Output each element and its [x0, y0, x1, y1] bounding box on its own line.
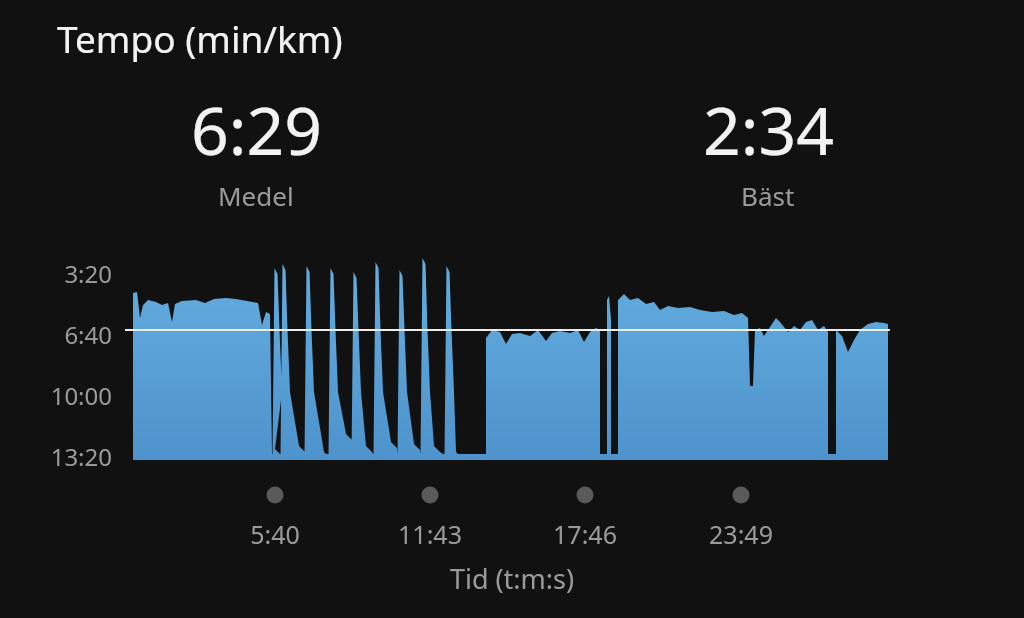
staticText: 10:00: [0, 379, 112, 412]
staticText: 23:49: [681, 517, 801, 551]
staticText: 6:40: [0, 318, 112, 351]
staticText: Medel: [218, 178, 294, 213]
staticText: 17:46: [525, 517, 645, 551]
staticText: 13:20: [0, 440, 112, 473]
staticText: 5:40: [215, 517, 335, 551]
button[interactable]: Pace chart: [0, 0, 1024, 618]
staticText: 2:34: [703, 84, 834, 174]
button[interactable]: 6:29: [0, 82, 512, 215]
staticText: 11:43: [370, 517, 490, 551]
staticText: Tempo (min/km): [57, 13, 343, 63]
button[interactable]: 2:34: [512, 82, 1024, 215]
staticText: Tid (t:m:s): [0, 560, 1024, 597]
staticText: 3:20: [0, 257, 112, 290]
staticText: 6:29: [191, 84, 322, 174]
staticText: Bäst: [741, 178, 795, 213]
